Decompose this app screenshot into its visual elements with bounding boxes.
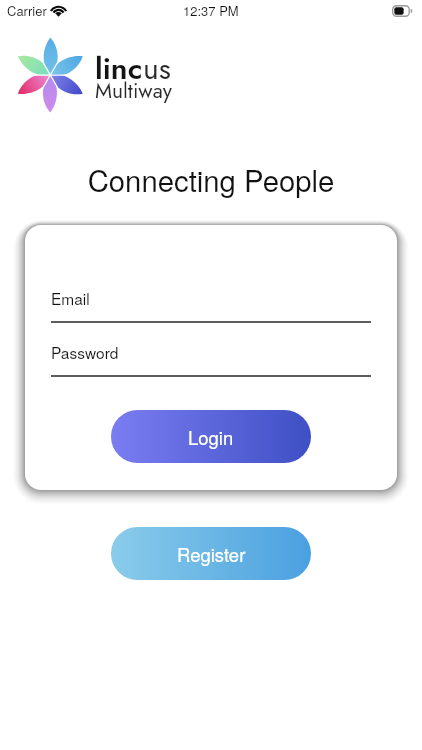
- staticText: Password: [51, 341, 119, 363]
- button[interactable]: Register: [111, 527, 311, 580]
- staticText: Email: [51, 287, 90, 309]
- staticText: Register: [177, 541, 246, 567]
- staticText: Login: [188, 424, 234, 450]
- staticText: Connecting People: [0, 158, 422, 200]
- button[interactable]: Email: [51, 287, 371, 323]
- staticText: 12:37 PM: [183, 1, 239, 20]
- staticText: Carrier: [7, 1, 47, 20]
- staticText: us: [143, 47, 171, 90]
- staticText: linc: [95, 47, 143, 90]
- button[interactable]: Login: [111, 410, 311, 463]
- staticText: Multiway: [95, 76, 172, 106]
- button[interactable]: Password: [51, 341, 371, 377]
